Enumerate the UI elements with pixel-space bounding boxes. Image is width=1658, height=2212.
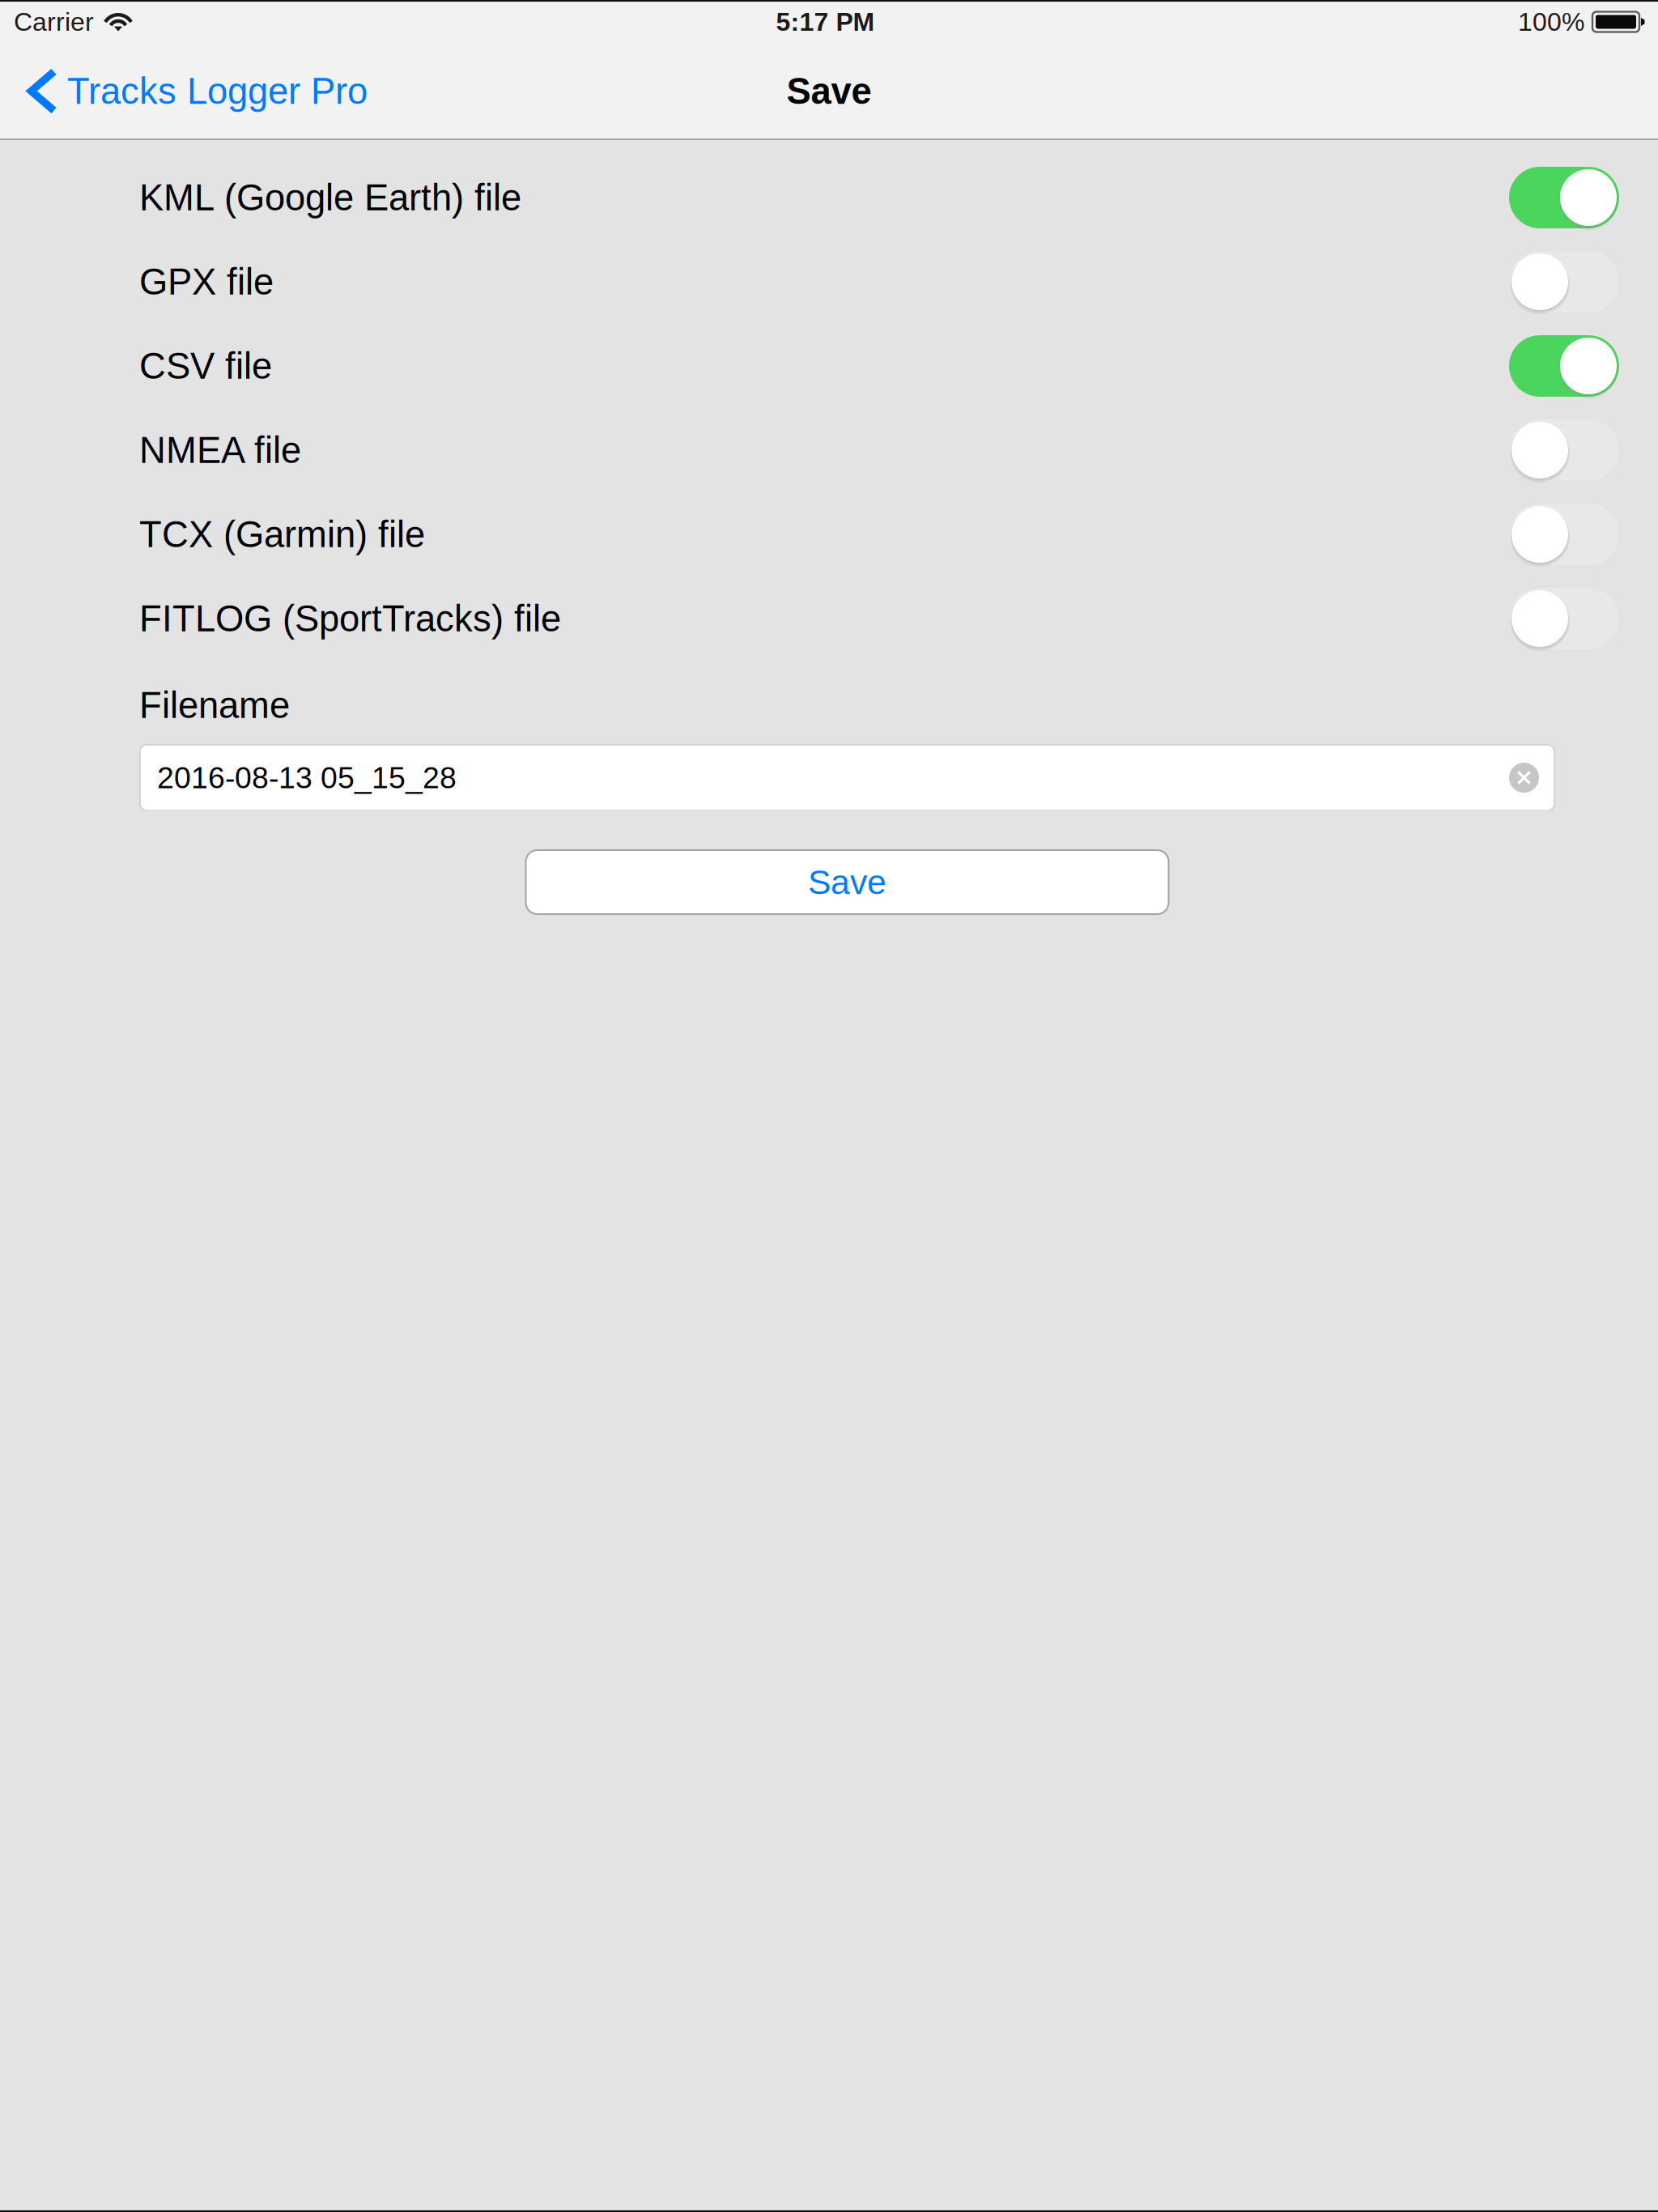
button[interactable]: Save [526,850,1169,914]
staticText: 2016-08-13 05_15_28 [157,761,457,795]
staticText: Carrier [14,7,94,36]
staticText: FITLOG (SportTracks) file [139,598,561,639]
button[interactable]: CSV file [0,324,1658,408]
button[interactable]: Tracks Logger Pro [0,44,615,138]
button[interactable]: FITLOG (SportTracks) file [0,576,1658,661]
staticText: NMEA file [139,430,301,471]
button[interactable]: TCX (Garmin) file [0,492,1658,576]
staticText: Save [808,863,886,901]
staticText: 5:17 PM [776,7,875,36]
staticText: TCX (Garmin) file [139,514,425,555]
button[interactable]: 2016-08-13 05_15_28 [140,745,1554,810]
staticText: Save [786,71,872,112]
staticText: 100% [1518,7,1584,36]
button[interactable]: KML (Google Earth) file [0,155,1658,240]
button[interactable]: NMEA file [0,408,1658,492]
staticText: GPX file [139,261,274,302]
staticText: Tracks Logger Pro [67,71,368,112]
staticText: KML (Google Earth) file [139,177,521,218]
staticText: Filename [139,685,290,726]
staticText: CSV file [139,345,272,386]
button[interactable]: GPX file [0,240,1658,324]
